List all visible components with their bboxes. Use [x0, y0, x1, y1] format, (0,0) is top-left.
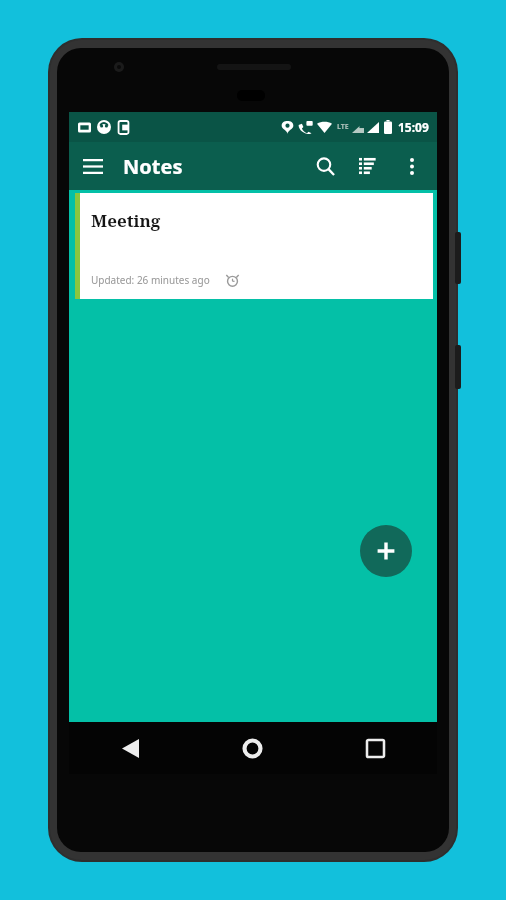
- button[interactable]: Add note: [360, 525, 412, 577]
- staticText: Meeting: [91, 209, 161, 232]
- staticText: Updated: 26 minutes ago: [91, 273, 210, 287]
- button[interactable]: Open navigation drawer: [69, 142, 117, 190]
- button[interactable]: Meeting: [75, 193, 433, 299]
- button[interactable]: More options: [391, 145, 433, 187]
- staticText: LTE: [337, 122, 349, 132]
- button[interactable]: Recent apps: [314, 722, 437, 774]
- button[interactable]: Back: [69, 722, 191, 774]
- button[interactable]: Home: [191, 722, 314, 774]
- button[interactable]: Sort notes: [347, 144, 391, 188]
- staticText: Notes: [123, 153, 183, 180]
- staticText: 15:09: [398, 119, 429, 135]
- button[interactable]: Search: [303, 144, 347, 188]
